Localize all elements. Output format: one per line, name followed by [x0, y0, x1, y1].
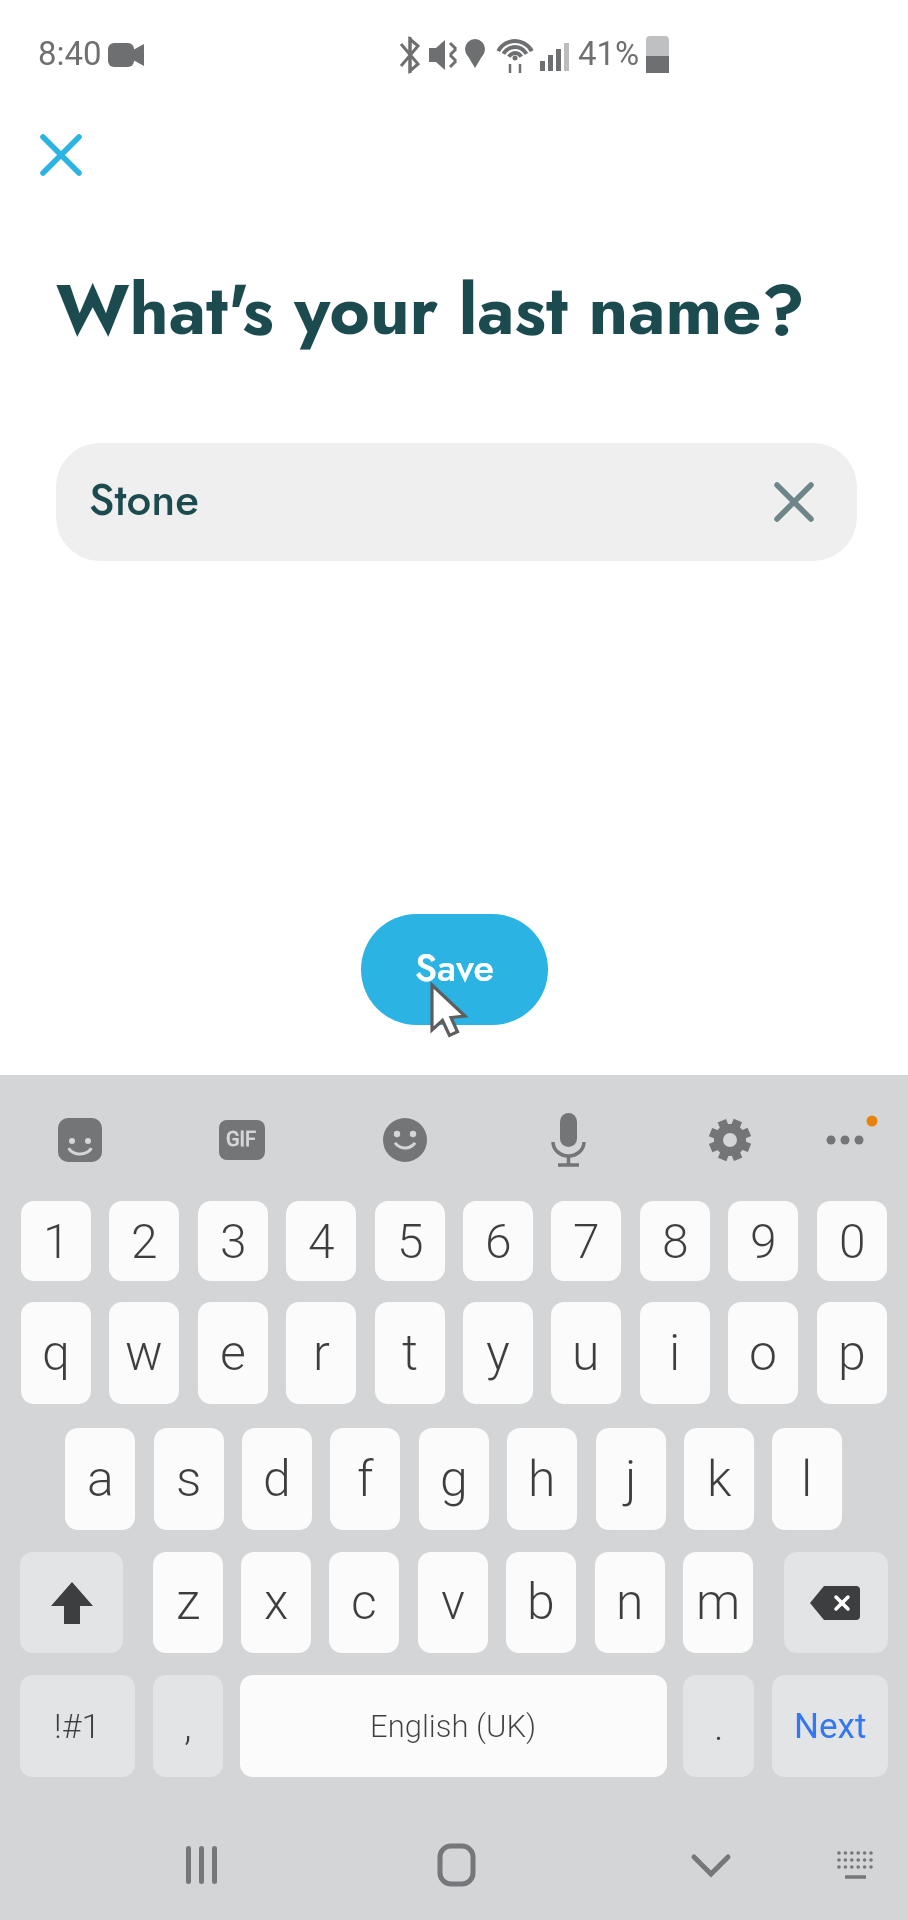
button[interactable]: o — [728, 1302, 798, 1404]
staticText: English (UK) — [370, 1708, 537, 1744]
button[interactable] — [410, 1810, 500, 1900]
staticText: a — [87, 1450, 114, 1509]
staticText: 5 — [397, 1213, 424, 1269]
button[interactable] — [665, 1810, 755, 1900]
button[interactable]: 1 — [21, 1201, 91, 1281]
button[interactable]: k — [684, 1428, 754, 1530]
button[interactable]: a — [65, 1428, 135, 1530]
button[interactable] — [52, 1112, 108, 1168]
button[interactable]: u — [551, 1302, 621, 1404]
staticText: Next — [794, 1706, 867, 1747]
button[interactable]: . — [683, 1675, 754, 1777]
button[interactable]: 4 — [286, 1201, 356, 1281]
button[interactable]: 6 — [463, 1201, 533, 1281]
staticText: 6 — [485, 1213, 512, 1269]
staticText: y — [486, 1324, 510, 1383]
button[interactable]: Next — [772, 1675, 888, 1777]
button[interactable]: d — [242, 1428, 312, 1530]
button[interactable]: 9 — [728, 1201, 798, 1281]
staticText: m — [696, 1573, 741, 1632]
staticText: x — [264, 1573, 289, 1632]
button[interactable] — [30, 124, 94, 188]
button[interactable]: w — [109, 1302, 179, 1404]
staticText: d — [263, 1450, 291, 1509]
button[interactable]: i — [640, 1302, 710, 1404]
button[interactable]: 7 — [551, 1201, 621, 1281]
button[interactable] — [784, 1552, 888, 1653]
button[interactable]: z — [153, 1552, 223, 1653]
button[interactable]: 3 — [198, 1201, 268, 1281]
button[interactable]: h — [507, 1428, 577, 1530]
staticText: g — [440, 1450, 468, 1509]
staticText: Save — [415, 940, 494, 995]
button[interactable] — [820, 1820, 890, 1890]
staticText: s — [176, 1450, 202, 1509]
button[interactable] — [377, 1112, 433, 1168]
button[interactable]: g — [419, 1428, 489, 1530]
button[interactable]: 0 — [817, 1201, 887, 1281]
staticText: 8 — [662, 1213, 689, 1269]
staticText: b — [527, 1573, 555, 1632]
staticText: 1 — [43, 1213, 70, 1269]
button[interactable]: 8 — [640, 1201, 710, 1281]
staticText: c — [351, 1573, 377, 1632]
staticText: h — [528, 1450, 556, 1509]
button[interactable]: Save — [361, 914, 548, 1025]
button[interactable]: !#1 — [20, 1675, 135, 1777]
button[interactable]: l — [772, 1428, 842, 1530]
button[interactable]: y — [463, 1302, 533, 1404]
button[interactable]: q — [21, 1302, 91, 1404]
button[interactable] — [160, 1810, 250, 1900]
staticText: w — [125, 1324, 163, 1383]
staticText: r — [313, 1324, 330, 1383]
button[interactable]: x — [241, 1552, 311, 1653]
button[interactable] — [540, 1112, 596, 1168]
staticText: v — [441, 1573, 466, 1632]
button[interactable]: s — [154, 1428, 224, 1530]
staticText: o — [749, 1324, 778, 1383]
staticText: GIF — [226, 1127, 257, 1150]
staticText: e — [220, 1324, 246, 1383]
button[interactable]: f — [330, 1428, 400, 1530]
button[interactable] — [20, 1552, 123, 1653]
button[interactable]: b — [506, 1552, 576, 1653]
button[interactable]: , — [153, 1675, 223, 1777]
button[interactable]: Stone — [56, 443, 857, 561]
button[interactable]: n — [595, 1552, 665, 1653]
staticText: 41% — [578, 34, 640, 73]
staticText: n — [616, 1573, 644, 1632]
staticText: What's your last name? — [56, 260, 805, 360]
button[interactable]: t — [375, 1302, 445, 1404]
staticText: 0 — [839, 1213, 866, 1269]
button[interactable]: 2 — [109, 1201, 179, 1281]
staticText: . — [714, 1703, 724, 1750]
staticText: 9 — [750, 1213, 777, 1269]
button[interactable] — [214, 1112, 270, 1168]
button[interactable]: r — [286, 1302, 356, 1404]
button[interactable]: v — [418, 1552, 488, 1653]
staticText: j — [625, 1450, 637, 1509]
staticText: 3 — [220, 1213, 247, 1269]
staticText: Stone — [89, 468, 199, 532]
staticText: i — [669, 1324, 681, 1383]
staticText: 2 — [131, 1213, 158, 1269]
button[interactable]: c — [329, 1552, 399, 1653]
button[interactable]: p — [817, 1302, 887, 1404]
staticText: 4 — [308, 1213, 335, 1269]
button[interactable] — [814, 1112, 884, 1168]
staticText: k — [707, 1450, 732, 1509]
staticText: l — [801, 1450, 813, 1509]
staticText: , — [184, 1703, 192, 1750]
button[interactable]: 5 — [375, 1201, 445, 1281]
button[interactable]: m — [683, 1552, 753, 1653]
staticText: 7 — [573, 1213, 600, 1269]
staticText: f — [357, 1450, 374, 1509]
staticText: t — [402, 1324, 419, 1383]
button[interactable]: j — [596, 1428, 666, 1530]
button[interactable]: e — [198, 1302, 268, 1404]
button[interactable]: English (UK) — [240, 1675, 667, 1777]
staticText: q — [42, 1324, 70, 1383]
staticText: p — [838, 1324, 866, 1383]
staticText: z — [176, 1573, 201, 1632]
button[interactable] — [702, 1112, 758, 1168]
